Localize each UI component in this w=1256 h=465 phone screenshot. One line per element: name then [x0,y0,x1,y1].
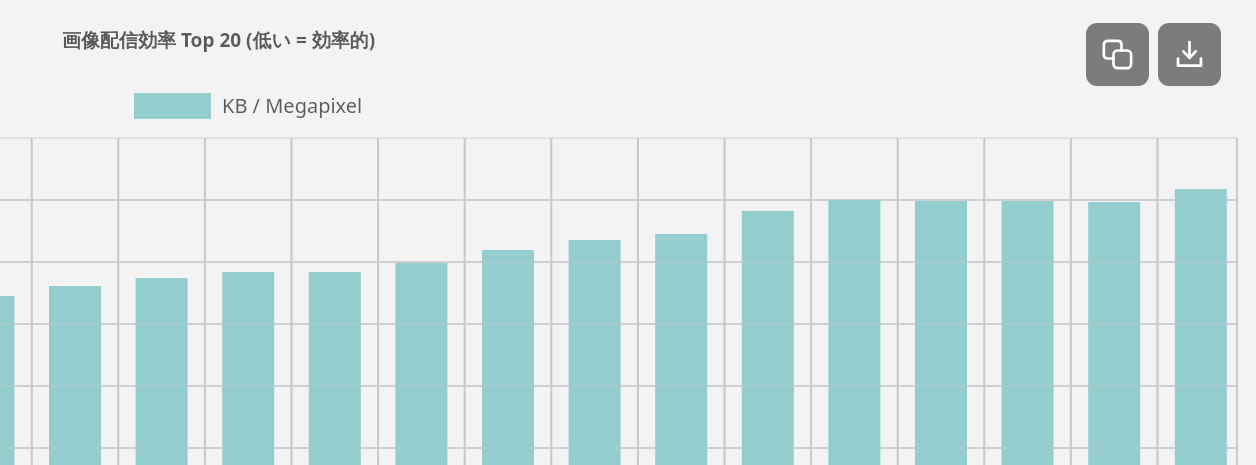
staticText: KB / Megapixel [222,92,363,119]
button[interactable]: Copy [1086,23,1149,86]
staticText: 画像配信効率 Top 20 (低い = 効率的) [62,27,376,53]
button[interactable]: Download [1158,23,1221,86]
